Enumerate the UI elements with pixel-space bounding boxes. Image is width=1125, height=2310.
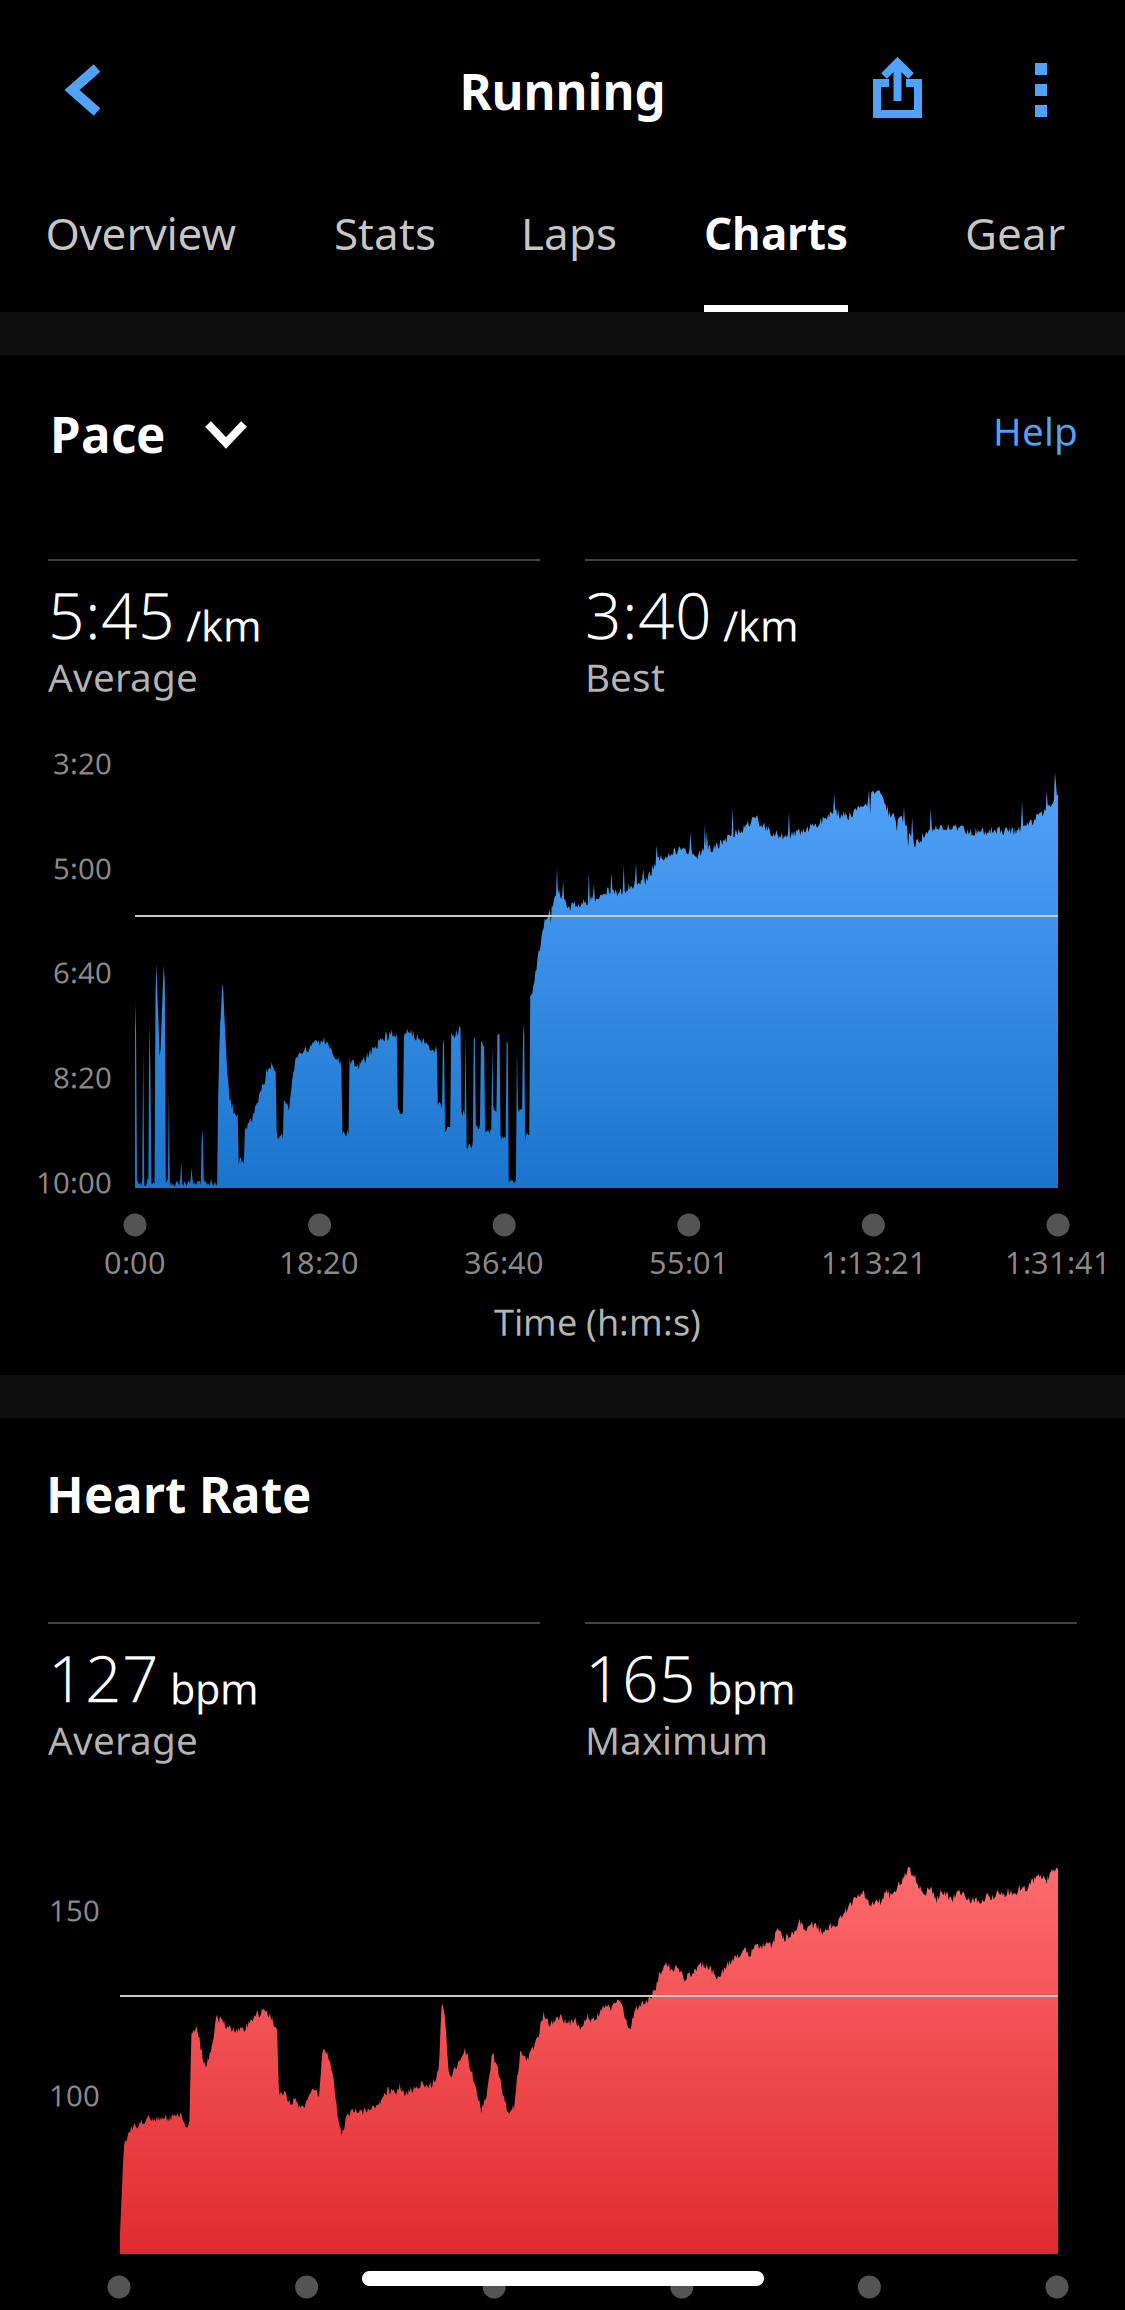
staticText: Help: [993, 405, 1078, 456]
button[interactable]: Back: [37, 33, 132, 147]
staticText: 165: [585, 1635, 696, 1720]
staticText: Heart Rate: [46, 1461, 311, 1526]
staticText: Stats: [334, 204, 436, 262]
button[interactable]: Stats: [275, 196, 495, 312]
staticText: Time (h:m:s): [494, 1298, 701, 1346]
staticText: Laps: [521, 204, 617, 262]
staticText: 55:01: [649, 1242, 729, 1282]
staticText: 1:13:21: [821, 1242, 927, 1282]
staticText: Maximum: [585, 1714, 768, 1765]
button[interactable]: Laps: [459, 196, 679, 312]
staticText: bpm: [170, 1661, 259, 1716]
button[interactable]: Charts: [666, 196, 886, 312]
staticText: /km: [723, 598, 799, 653]
staticText: 100: [49, 2075, 100, 2114]
staticText: Running: [459, 58, 665, 123]
staticText: 3:20: [53, 743, 112, 782]
staticText: Best: [585, 651, 665, 702]
staticText: /km: [186, 598, 262, 653]
staticText: 6:40: [53, 952, 112, 991]
staticText: 1:31:41: [1005, 1242, 1111, 1282]
staticText: Overview: [45, 204, 236, 262]
button[interactable]: Help: [969, 377, 1102, 484]
staticText: 10:00: [36, 1162, 112, 1201]
staticText: 0:00: [104, 1242, 166, 1282]
staticText: Average: [48, 651, 198, 702]
staticText: 5:45: [48, 572, 175, 657]
button[interactable]: Share: [847, 34, 948, 142]
staticText: 3:40: [585, 572, 712, 657]
staticText: Charts: [704, 204, 848, 262]
button[interactable]: Pace: [32, 384, 272, 488]
staticText: Pace: [50, 401, 165, 466]
button[interactable]: More options: [995, 35, 1087, 145]
staticText: 8:20: [53, 1057, 112, 1096]
staticText: Gear: [965, 204, 1065, 262]
staticText: 36:40: [464, 1242, 544, 1282]
button[interactable]: Overview: [31, 196, 251, 312]
staticText: 5:00: [53, 848, 112, 887]
staticText: Average: [48, 1714, 198, 1765]
staticText: bpm: [707, 1661, 796, 1716]
button[interactable]: Gear: [905, 196, 1125, 312]
staticText: 18:20: [279, 1242, 359, 1282]
staticText: 127: [48, 1635, 159, 1720]
staticText: 150: [49, 1890, 100, 1929]
